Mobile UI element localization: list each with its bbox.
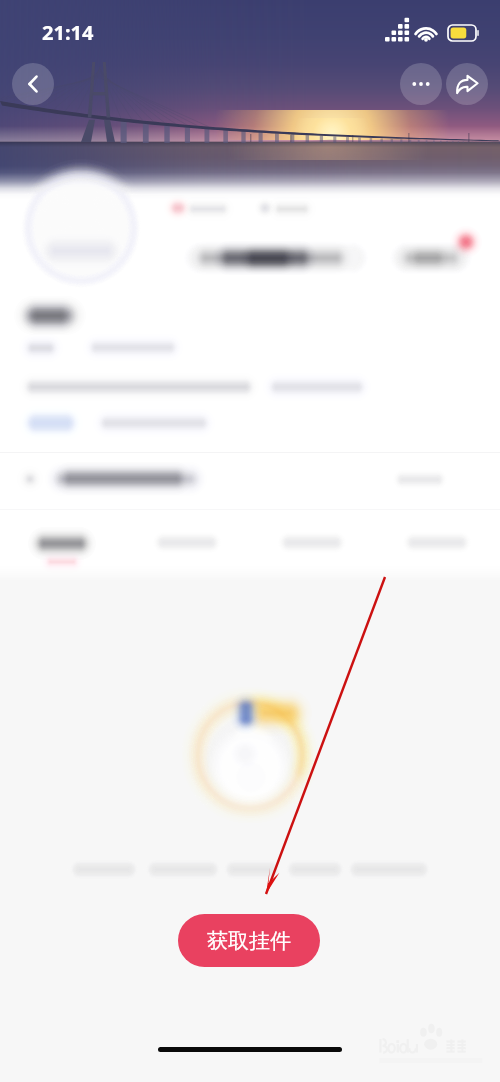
button[interactable] xyxy=(250,512,375,568)
button[interactable] xyxy=(392,244,470,272)
button[interactable] xyxy=(0,512,125,568)
staticText: 获取挂件 xyxy=(207,928,291,954)
button[interactable] xyxy=(125,512,250,568)
button[interactable]: Share xyxy=(446,63,488,105)
button[interactable] xyxy=(375,512,500,568)
staticText: 21:14 xyxy=(42,19,94,46)
button[interactable] xyxy=(0,460,500,508)
button[interactable]: Profile photo xyxy=(22,170,140,288)
button[interactable]: More options xyxy=(400,63,442,105)
button[interactable] xyxy=(186,244,366,272)
button[interactable]: 获取挂件 xyxy=(178,914,320,967)
button[interactable]: Back xyxy=(12,63,54,105)
